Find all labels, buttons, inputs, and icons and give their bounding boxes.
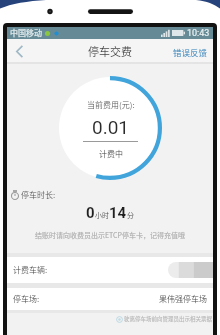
staticText: 小时 [95,210,109,220]
staticText: 10:43 [187,28,210,39]
staticText: 分 [127,210,134,220]
staticText: 果伟强停车场 [159,293,207,305]
staticText: 结账时请向收费员出示ETCP停车卡，记得充值哦 [7,230,213,240]
staticText: 计费车辆: [13,264,48,276]
button[interactable]: 错误反馈 [168,40,213,64]
staticText: 错误反馈 [173,46,208,58]
button[interactable]: 停车场: [7,288,213,310]
staticText: 停车时长: [21,189,56,201]
staticText: 14 [109,204,127,222]
button[interactable]: 计费车辆: [7,257,213,283]
button[interactable]: 返回 [7,39,31,64]
staticText: 0 [86,204,95,222]
staticText: 0.01 [92,116,130,138]
staticText: 计费中 [99,148,123,160]
staticText: 中国移动 [10,27,42,39]
staticText: 停车场: [13,293,40,305]
staticText: 停车交费 [88,43,132,59]
staticText: 驶离停车场前向管理员出示相关票据 [124,315,213,323]
staticText: 当前费用(元): [87,99,135,111]
